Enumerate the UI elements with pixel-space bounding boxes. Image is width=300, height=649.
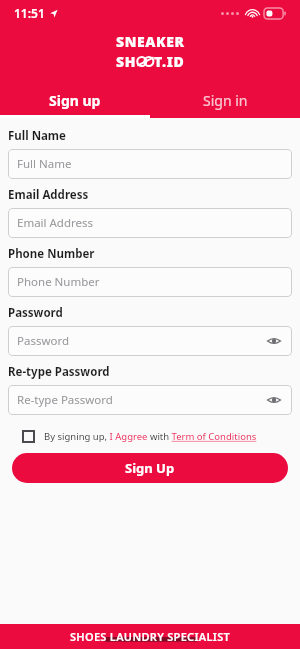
- button[interactable]: Agree to terms checkbox: [8, 430, 292, 443]
- staticText: By signing up, I Aggree with Term of Con…: [44, 430, 257, 443]
- staticText: SH: [116, 52, 137, 71]
- staticText: Sign up: [49, 91, 101, 110]
- staticText: Phone Number: [17, 274, 283, 290]
- staticText: Email Address: [17, 215, 283, 231]
- staticText: T.ID: [154, 52, 185, 71]
- staticText: Re-type Password: [17, 392, 265, 408]
- staticText: Password: [17, 333, 265, 349]
- staticText: Sign Up: [125, 459, 175, 477]
- staticText: 11:51: [14, 5, 45, 21]
- staticText: SHOES LAUNDRY SPECIALIST: [70, 629, 231, 644]
- staticText: Re-type Password: [8, 364, 110, 380]
- staticText: SNEAKER: [116, 32, 185, 51]
- staticText: Phone Number: [8, 246, 95, 262]
- staticText: Full Name: [17, 156, 283, 172]
- button[interactable]: Re-type Password: [8, 385, 292, 415]
- button[interactable]: Sign Up: [12, 453, 288, 483]
- staticText: Full Name: [8, 128, 66, 144]
- button[interactable]: Email Address: [8, 208, 292, 238]
- button[interactable]: Full Name: [8, 149, 292, 179]
- button[interactable]: Sign up: [0, 85, 150, 115]
- staticText: Sign in: [203, 91, 248, 110]
- staticText: Password: [8, 305, 63, 321]
- staticText: Email Address: [8, 187, 89, 203]
- button[interactable]: Show password: [265, 391, 283, 409]
- button[interactable]: Agree to terms checkbox: [22, 430, 35, 443]
- button[interactable]: Password: [8, 326, 292, 356]
- button[interactable]: Phone Number: [8, 267, 292, 297]
- button[interactable]: Sign in: [150, 85, 300, 115]
- button[interactable]: Show password: [265, 332, 283, 350]
